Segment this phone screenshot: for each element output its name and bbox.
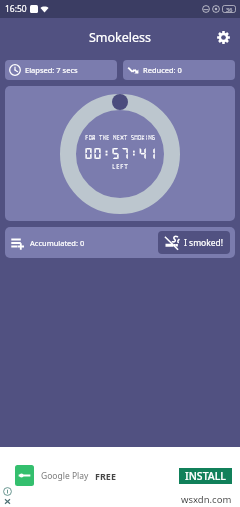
- other: Ad info: [3, 487, 12, 496]
- staticText: Reduced: 0: [143, 65, 182, 75]
- staticText: Elapsed: 7 secs: [25, 65, 78, 75]
- button[interactable]: Reduced: 0: [123, 60, 235, 80]
- staticText: 16:50: [5, 3, 27, 15]
- staticText: Smokeless: [89, 29, 152, 46]
- other: Close ad: [3, 497, 12, 506]
- staticText: FREE: [95, 470, 116, 482]
- button[interactable]: Elapsed: 7 secs: [5, 60, 117, 80]
- staticText: Google Play: [41, 470, 89, 482]
- staticText: wsxdn.com: [181, 493, 232, 506]
- staticText: I smoked!: [184, 237, 224, 249]
- button[interactable]: I smoked!: [158, 231, 230, 254]
- staticText: Accumulated: 0: [30, 238, 85, 248]
- staticText: 36: [226, 6, 233, 13]
- staticText: INSTALL: [185, 469, 226, 483]
- staticText: LEFT: [112, 163, 129, 169]
- button[interactable]: INSTALL: [179, 468, 232, 484]
- button[interactable]: Settings: [211, 25, 235, 49]
- staticText: FOR THE NEXT SMOKING: [85, 135, 156, 141]
- staticText: 00:57:41: [84, 146, 157, 161]
